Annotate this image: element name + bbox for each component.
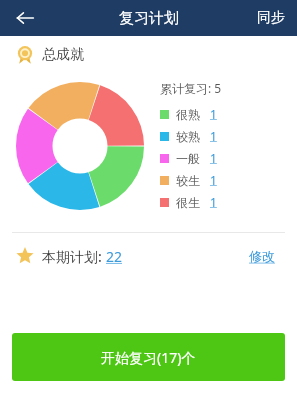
button[interactable]: 修改 — [243, 244, 281, 268]
staticText: 很生 — [176, 195, 200, 210]
button[interactable]: 本期计划: — [42, 247, 123, 266]
staticText: 修改 — [249, 248, 275, 264]
staticText: 较熟 — [176, 129, 200, 144]
staticText: 开始复习(17)个 — [101, 348, 196, 367]
staticText: 1 — [210, 194, 217, 210]
button[interactable]: Back — [8, 1, 42, 35]
button[interactable]: 较生 — [160, 169, 287, 191]
button[interactable]: 较熟 — [160, 125, 287, 147]
staticText: 较生 — [176, 173, 200, 188]
staticText: 总成就 — [42, 46, 84, 64]
staticText: 很熟 — [176, 107, 200, 122]
staticText: 1 — [210, 172, 217, 188]
staticText: 本期计划: — [42, 247, 106, 266]
staticText: 1 — [210, 150, 217, 166]
button[interactable]: 很生 — [160, 191, 287, 213]
staticText: 累计复习: 5 — [160, 80, 222, 96]
button[interactable]: 开始复习(17)个 — [12, 333, 285, 381]
staticText: 22 — [106, 247, 123, 266]
button[interactable]: 同步 — [245, 3, 297, 33]
button[interactable]: 很熟 — [160, 103, 287, 125]
staticText: 同步 — [257, 9, 285, 27]
button[interactable]: 一般 — [160, 147, 287, 169]
staticText: 复习计划 — [119, 9, 179, 28]
staticText: 一般 — [176, 151, 200, 166]
staticText: 1 — [210, 128, 217, 144]
staticText: 1 — [210, 106, 217, 122]
